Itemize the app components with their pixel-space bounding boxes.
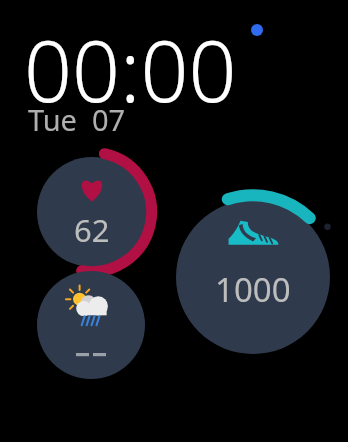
button[interactable]: Heart rate 62	[24, 144, 160, 280]
staticText: 00:00	[24, 12, 237, 126]
button[interactable]: Steps 1000	[168, 192, 338, 362]
button[interactable]: Weather	[24, 258, 158, 392]
staticText: Tue 07	[28, 100, 126, 139]
button[interactable]: Notification	[251, 24, 263, 36]
staticText: 62	[74, 209, 110, 251]
staticText: 1000	[215, 267, 291, 312]
